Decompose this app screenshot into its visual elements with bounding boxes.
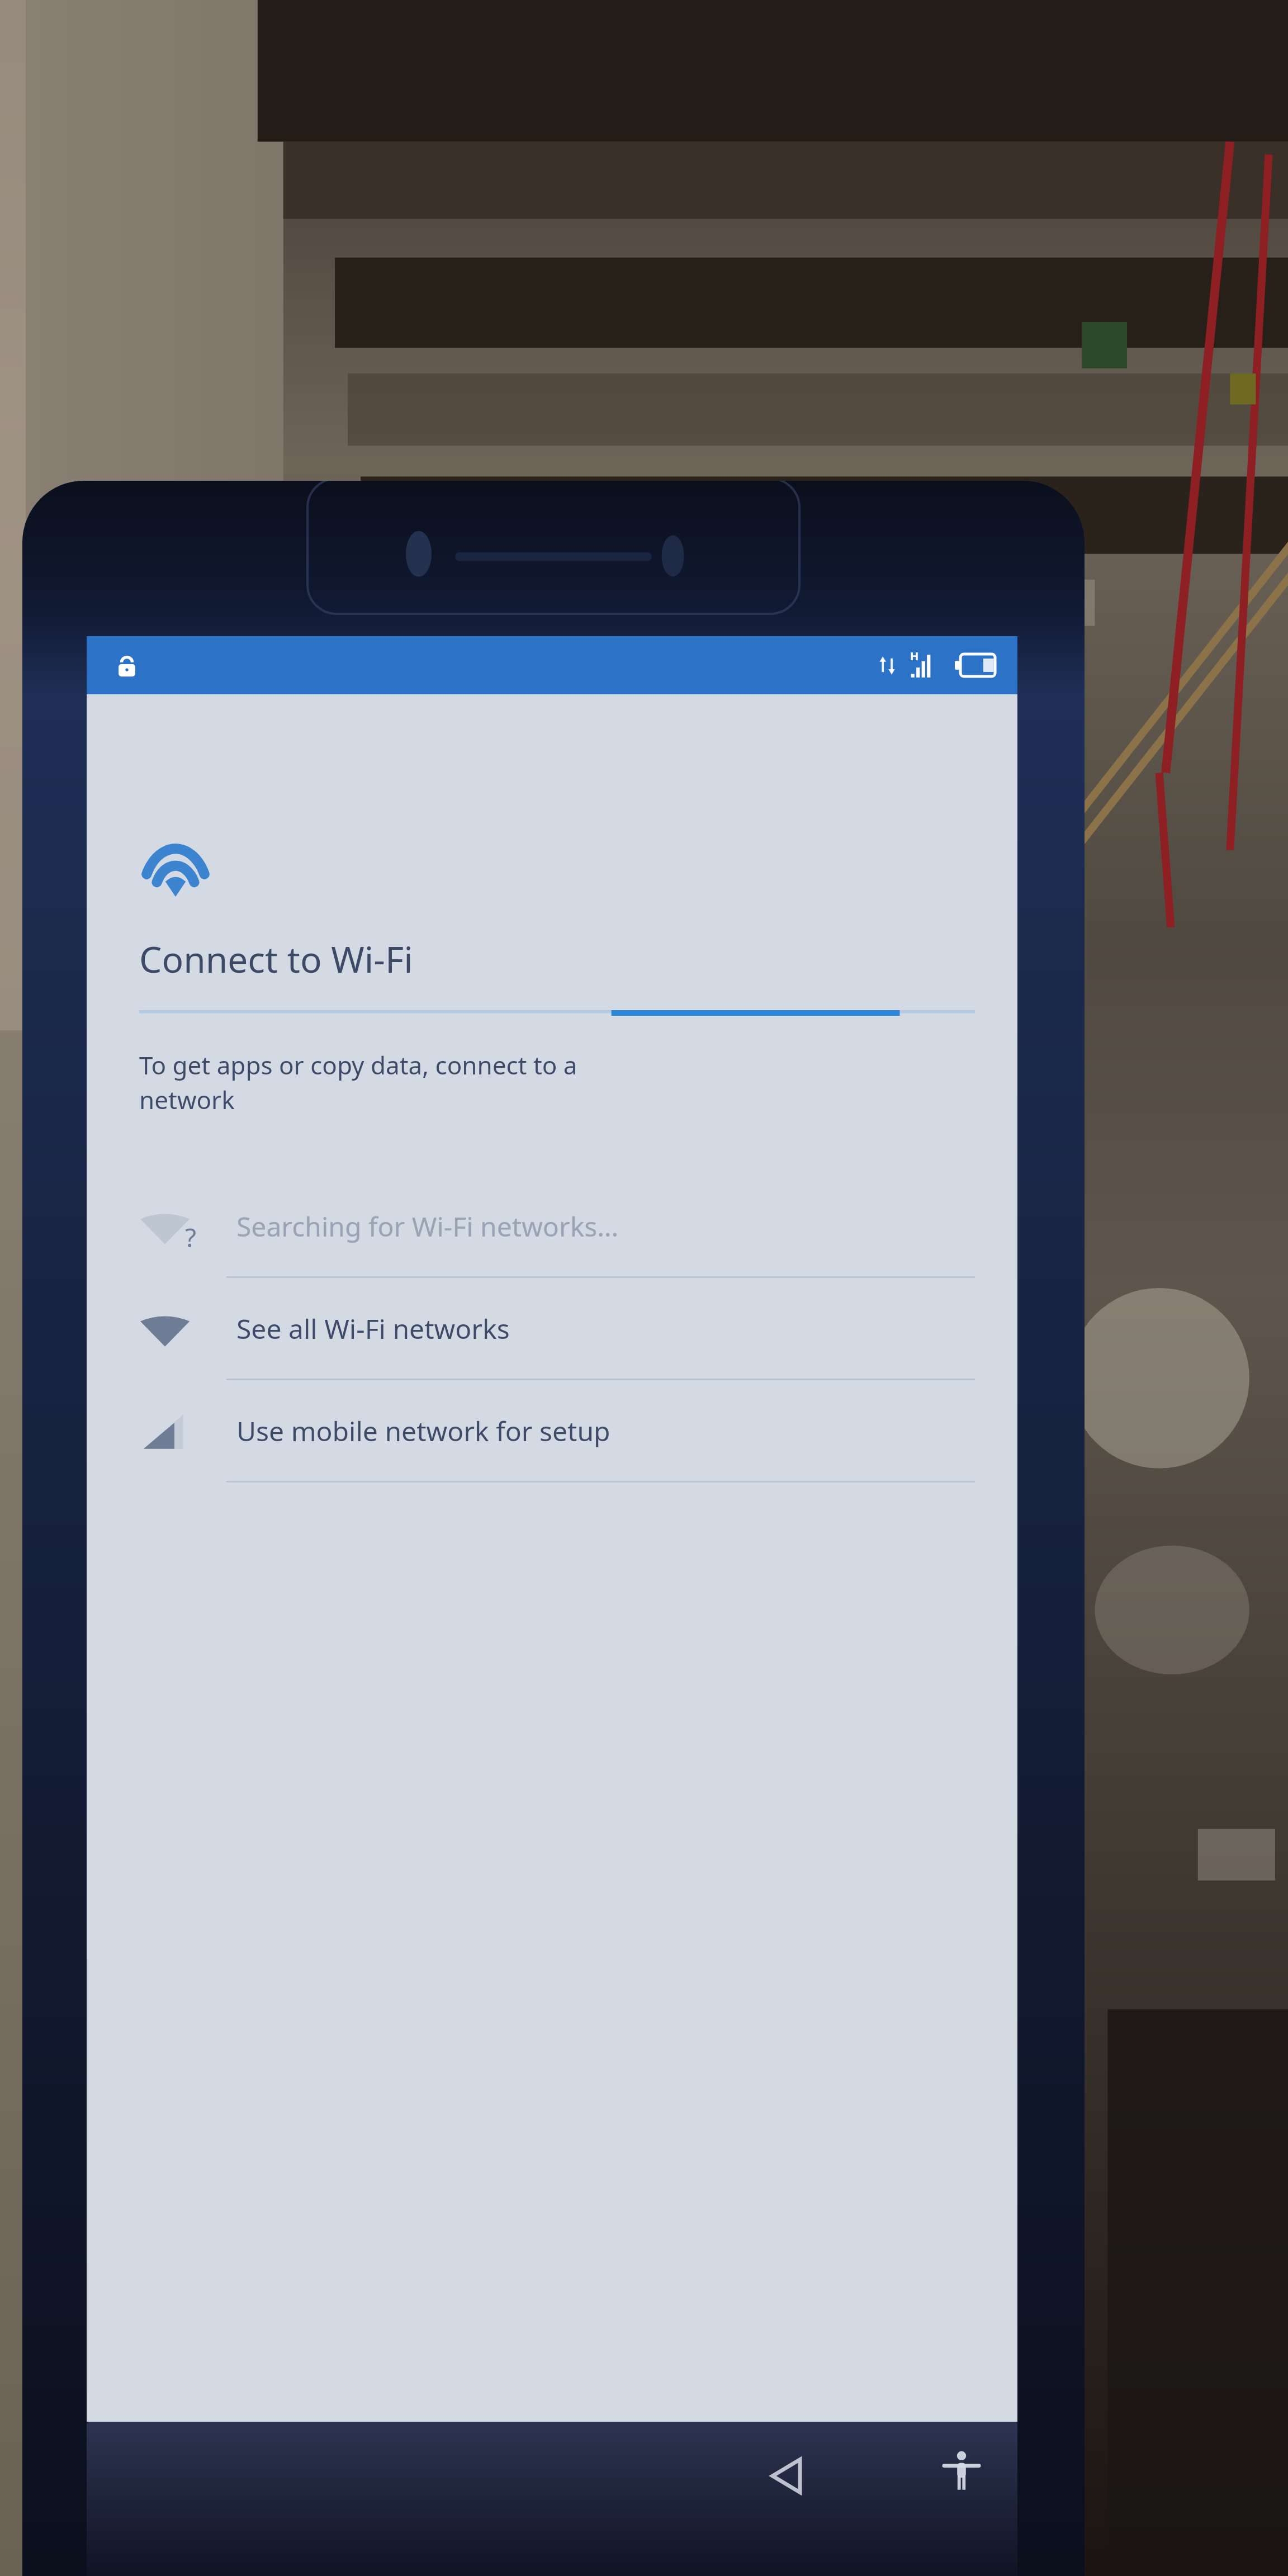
button[interactable]: ?	[87, 1176, 1017, 1276]
staticText: Use mobile network for setup	[236, 1413, 610, 1449]
staticText: Connect to Wi-Fi	[139, 935, 413, 983]
staticText: H	[910, 648, 919, 664]
staticText: To get apps or copy data, connect to a n…	[139, 1048, 577, 1116]
staticText: Searching for Wi-Fi networks…	[236, 1208, 619, 1244]
staticText: ?	[185, 1220, 196, 1255]
staticText: See all Wi-Fi networks	[236, 1310, 510, 1347]
button[interactable]: See all Wi-Fi networks	[87, 1278, 1017, 1379]
button[interactable]: Use mobile network for setup	[87, 1380, 1017, 1481]
button[interactable]: Accessibility	[920, 2430, 1003, 2513]
button[interactable]: Back	[746, 2434, 830, 2518]
